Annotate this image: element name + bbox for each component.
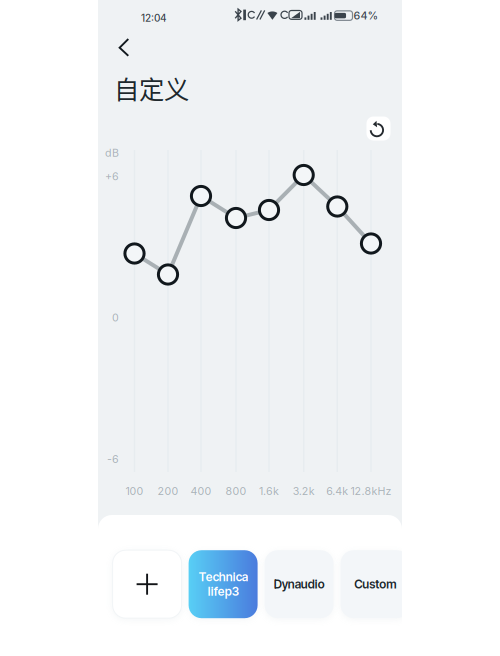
button[interactable]: Reset — [366, 116, 390, 140]
staticText: dB — [105, 146, 119, 159]
staticText: 12.8kHz — [350, 484, 391, 497]
staticText: +6 — [105, 170, 119, 183]
staticText: 1.6k — [259, 484, 279, 497]
button[interactable]: Back — [110, 32, 146, 64]
staticText: 64% — [353, 9, 378, 22]
staticText: 12:04 — [141, 12, 167, 24]
staticText: 6.4k — [326, 484, 348, 497]
button[interactable]: Custom — [341, 550, 410, 618]
staticText: 200 — [157, 484, 178, 497]
staticText: Custom — [354, 577, 396, 591]
staticText: 100 — [125, 484, 143, 497]
staticText: 自定义 — [114, 70, 189, 106]
staticText: Technica lifep3 — [199, 570, 248, 599]
staticText: 0 — [112, 311, 119, 324]
staticText: 800 — [225, 484, 246, 497]
button[interactable] — [113, 550, 182, 618]
button[interactable]: Dynaudio — [265, 550, 334, 618]
staticText: -6 — [107, 453, 119, 466]
button[interactable]: Technica lifep3 — [189, 550, 258, 618]
staticText: 400 — [190, 484, 211, 497]
staticText: Dynaudio — [274, 577, 325, 591]
staticText: 3.2k — [293, 484, 315, 497]
